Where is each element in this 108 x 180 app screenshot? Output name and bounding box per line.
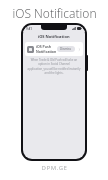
staticText: application, you will be notified instan… [27, 67, 81, 75]
staticText: iOS Notification [12, 5, 97, 21]
staticText: DPM.GE [41, 164, 68, 172]
staticText: Dismiss [60, 47, 72, 51]
staticText: iOS Notification [38, 34, 70, 39]
staticText: When Trade & Old Push will take an optio… [27, 58, 81, 66]
button[interactable]: iOS Push Notification [25, 42, 83, 56]
staticText: 9:41 [26, 27, 32, 31]
staticText: iOS Push Notification [36, 44, 57, 54]
button[interactable]: Open notification [77, 47, 81, 51]
button[interactable]: Dismiss [57, 46, 75, 52]
